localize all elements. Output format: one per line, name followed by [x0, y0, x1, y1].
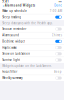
staticText: 9:41: [2, 0, 9, 3]
button[interactable]: Alarm sound: [0, 32, 64, 38]
button[interactable]: Back: [2, 3, 4, 8]
button[interactable]: Weekly summary: [0, 75, 64, 81]
staticText: Sleep tracking: [2, 15, 21, 19]
staticText: Haptic wake: [2, 46, 17, 49]
button[interactable]: Show on Lock Screen: [0, 51, 64, 57]
staticText: Sleep data syncs with the Health app.: [2, 21, 53, 25]
staticText: Alarm sound: [2, 33, 19, 37]
staticText: Snooze reminder: [2, 27, 26, 31]
staticText: Done: [54, 4, 62, 7]
button[interactable]: Done: [54, 4, 62, 7]
staticText: Wake up schedule: [2, 9, 27, 13]
staticText: Weekly summary: [2, 76, 22, 80]
staticText: ‹: [2, 3, 3, 8]
staticText: 7:00 AM: [50, 9, 62, 13]
staticText: Alarms and Widgets: [5, 4, 35, 7]
staticText: Widgets update on the Lock Screen.: [2, 64, 52, 68]
button[interactable]: Sleep tracking: [0, 14, 64, 20]
button[interactable]: Snooze reminder: [0, 26, 64, 32]
staticText: Sleep: [54, 70, 62, 74]
button[interactable]: Haptic wake: [0, 45, 64, 50]
staticText: Sunrise light: [2, 58, 20, 62]
staticText: Chimes: [52, 33, 62, 37]
staticText: Show on Lock Screen: [2, 52, 30, 55]
button[interactable]: Bedtime widget: [0, 38, 64, 44]
staticText: Bedtime widget: [2, 40, 25, 43]
staticText: ▮▮▮: [59, 1, 62, 2]
button[interactable]: Wake up schedule: [0, 8, 64, 14]
button[interactable]: Focus filter: [0, 69, 64, 75]
staticText: Focus filter: [2, 70, 17, 74]
button[interactable]: Sunrise light: [0, 57, 64, 63]
